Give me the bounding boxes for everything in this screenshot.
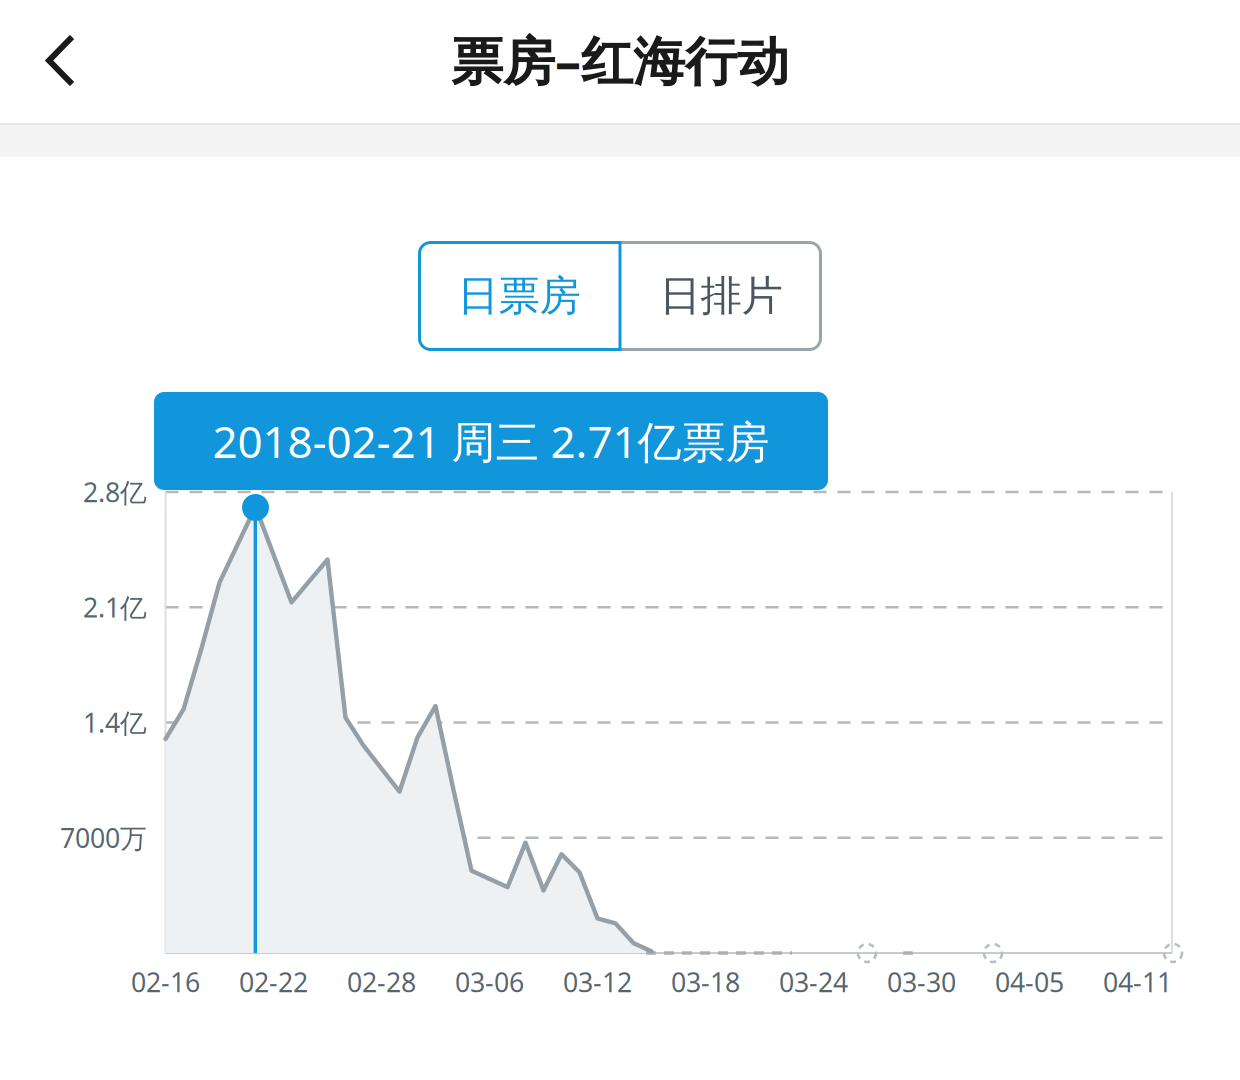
- staticText: 2.8亿: [83, 474, 147, 510]
- button[interactable]: 日排片: [620, 241, 822, 351]
- button[interactable]: 日票房: [418, 241, 620, 351]
- staticText: 02-28: [347, 964, 416, 1000]
- staticText: 03-06: [455, 964, 524, 1000]
- button[interactable]: Back: [23, 11, 98, 110]
- staticText: 03-24: [779, 964, 848, 1000]
- staticText: 2.1亿: [83, 589, 147, 625]
- staticText: 1.4亿: [83, 705, 147, 740]
- staticText: 票房–红海行动: [451, 25, 789, 95]
- staticText: 02-22: [239, 964, 308, 1000]
- staticText: 04-11: [1103, 964, 1172, 1000]
- staticText: 2018-02-21 周三 2.71亿票房: [212, 412, 769, 470]
- staticText: 7000万: [60, 820, 147, 855]
- staticText: 03-30: [887, 964, 956, 1000]
- staticText: 04-05: [995, 964, 1064, 1000]
- staticText: 03-12: [563, 964, 632, 1000]
- staticText: 02-16: [131, 964, 200, 1000]
- staticText: 日排片: [659, 271, 782, 321]
- staticText: 日票房: [457, 271, 580, 321]
- staticText: 03-18: [671, 964, 740, 1000]
